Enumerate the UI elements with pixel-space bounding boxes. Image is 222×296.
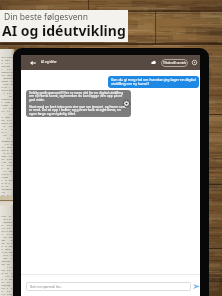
other: Regenerate [123, 100, 130, 107]
button[interactable]: Kan du gi meg råd om hvordan jeg lager e… [108, 76, 199, 88]
staticText: Tilbakestill samtale [163, 61, 187, 65]
button[interactable]: Send [191, 281, 201, 291]
staticText: Veldig godt spørsmål! Her er noen råd fo… [29, 90, 127, 102]
staticText: Skriv inn spørsmål her... [30, 285, 63, 289]
staticText: Kan du gi meg råd om hvordan jeg lager e… [111, 77, 197, 86]
button[interactable]: Cloud sync [149, 58, 158, 67]
button[interactable]: Settings [190, 58, 199, 67]
staticText: Din beste følgesvenn [4, 11, 88, 23]
button[interactable]: Tilbakestill samtale [161, 59, 188, 67]
staticText: AI og idéutvikling [2, 21, 126, 40]
staticText: AI og idéer [41, 60, 57, 64]
button[interactable]: Skriv inn spørsmål her... [26, 282, 191, 291]
button[interactable]: Back [28, 58, 38, 68]
staticText: Start med en kort intro som sier noe om … [29, 104, 127, 116]
button[interactable]: Veldig godt spørsmål! Her er noen råd fo… [26, 90, 131, 117]
